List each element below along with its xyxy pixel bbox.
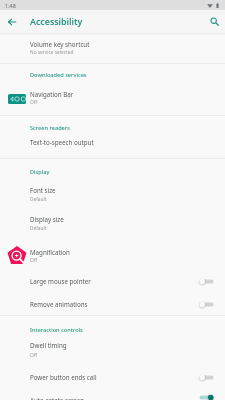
button[interactable] [0,83,225,110]
staticText: Font size [30,186,56,194]
staticText: 1:48 [5,2,16,9]
button[interactable] [0,241,225,267]
button[interactable] [0,366,225,388]
staticText: Volume key shortcut [30,40,90,48]
staticText: Interaction controls [30,326,83,334]
staticText: Downloaded services [30,71,87,79]
staticText: Accessibility [30,16,83,28]
button[interactable] [0,270,225,292]
button[interactable]: Search [206,13,222,29]
button[interactable] [0,392,225,400]
staticText: Navigation Bar [30,90,74,98]
button[interactable] [0,35,225,59]
staticText: Remove animations [30,300,88,308]
staticText: Off [30,352,38,359]
button[interactable]: Back [4,14,20,30]
button[interactable] [0,209,225,234]
staticText: Text-to-speech output [30,138,94,146]
staticText: Display [30,168,50,176]
staticText: Power button ends call [30,373,97,381]
button[interactable] [0,180,225,205]
staticText: Default [30,196,47,203]
staticText: Off [30,99,38,106]
staticText: Large mouse pointer [30,277,91,285]
staticText: Default [30,225,47,232]
staticText: Dwell timing [30,341,67,349]
staticText: Auto-rotate screen [30,396,85,400]
staticText: Magnification [30,248,70,256]
staticText: No service selected [30,49,74,56]
staticText: Screen readers [30,124,70,132]
staticText: Off [30,257,38,264]
button[interactable] [0,334,225,359]
button[interactable] [0,131,225,149]
staticText: Display size [30,215,64,223]
button[interactable] [0,293,225,315]
